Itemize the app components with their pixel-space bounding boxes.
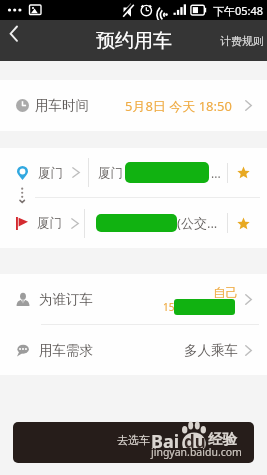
staticText: 多人乘车: [184, 342, 238, 359]
staticText: 厦门: [37, 215, 62, 231]
staticText: 厦门: [98, 165, 123, 181]
staticText: 下午05:48: [213, 3, 264, 18]
button[interactable]: 用车需求: [0, 325, 267, 375]
staticText: ...: [211, 165, 221, 181]
staticText: 预约用车: [96, 29, 172, 53]
staticText: 为谁订车: [39, 291, 93, 308]
staticText: 用车时间: [35, 97, 89, 114]
button[interactable]: 厦门: [0, 148, 267, 197]
staticText: Bai: [151, 429, 180, 454]
staticText: 自己: [213, 285, 238, 301]
staticText: 经验: [208, 430, 237, 448]
button[interactable]: 为谁订车: [0, 274, 267, 324]
button[interactable]: Back: [0, 20, 30, 61]
staticText: jingyan.baidu.com: [151, 445, 242, 459]
button[interactable]: 用车时间: [0, 80, 267, 131]
button[interactable]: 厦门: [0, 198, 267, 248]
staticText: 计费规则: [220, 34, 264, 48]
staticText: 用车需求: [39, 342, 93, 359]
button[interactable]: 计费规则: [217, 20, 267, 61]
staticText: 去选车: [117, 433, 150, 447]
staticText: (公交...: [177, 214, 218, 232]
staticText: 厦门: [38, 165, 63, 181]
staticText: du: [184, 430, 206, 453]
staticText: 5月8日 今天 18:50: [125, 97, 232, 115]
staticText: 15: [163, 300, 175, 314]
button[interactable]: [13, 422, 254, 463]
